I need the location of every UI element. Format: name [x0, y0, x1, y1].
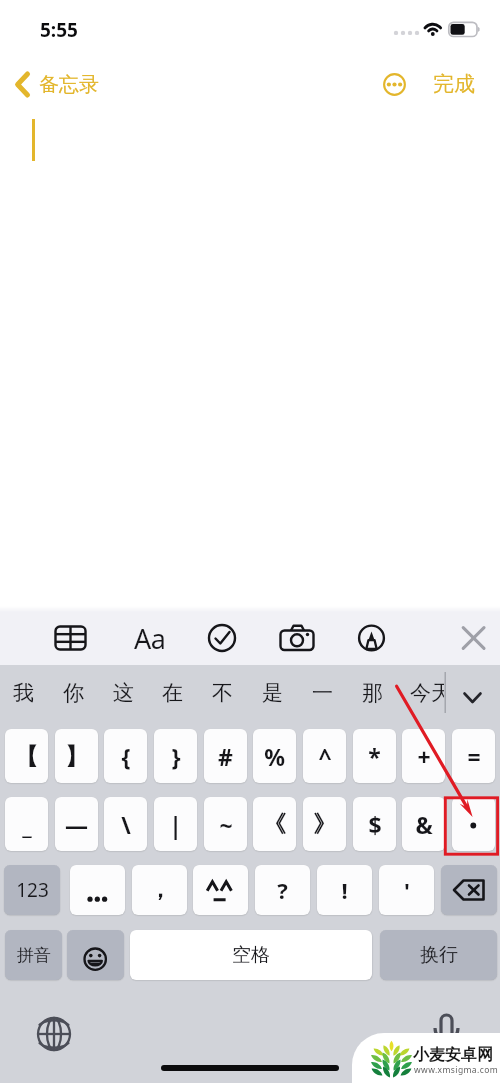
- button[interactable]: 一: [298, 665, 347, 721]
- staticText: !: [341, 875, 348, 905]
- button[interactable]: #: [204, 729, 247, 783]
- button[interactable]: Expand candidates: [450, 665, 500, 721]
- button[interactable]: ，: [132, 865, 187, 915]
- button[interactable]: —: [55, 797, 98, 851]
- staticText: 这: [113, 680, 134, 706]
- button[interactable]: ': [379, 865, 434, 915]
- button[interactable]: %: [253, 729, 296, 783]
- staticText: ~: [219, 809, 233, 840]
- button[interactable]: Close keyboard: [450, 613, 498, 661]
- button[interactable]: ~: [204, 797, 247, 851]
- button[interactable]: Camera: [271, 613, 323, 661]
- staticText: 那: [362, 680, 383, 706]
- staticText: 一: [312, 680, 333, 706]
- staticText: 5:55: [40, 17, 78, 43]
- staticText: +: [417, 741, 431, 772]
- button[interactable]: &: [402, 797, 445, 851]
- button[interactable]: |: [154, 797, 197, 851]
- button[interactable]: Switch keyboard language: [36, 1016, 72, 1052]
- button[interactable]: Insert table: [45, 613, 97, 661]
- button[interactable]: 这: [99, 665, 148, 721]
- button[interactable]: 123: [4, 865, 60, 915]
- button[interactable]: !: [317, 865, 372, 915]
- button[interactable]: Emoticon: [193, 865, 248, 915]
- staticText: 小麦安卓网: [413, 1045, 493, 1065]
- button[interactable]: =: [452, 729, 495, 783]
- button[interactable]: ^: [303, 729, 346, 783]
- staticText: ': [404, 875, 410, 905]
- button[interactable]: ?: [255, 865, 310, 915]
- button[interactable]: Dictation: [430, 1008, 464, 1048]
- button[interactable]: *: [353, 729, 396, 783]
- staticText: |: [169, 809, 182, 840]
- button[interactable]: $: [353, 797, 396, 851]
- staticText: 《: [263, 810, 286, 839]
- staticText: {: [121, 741, 131, 772]
- button[interactable]: 你: [49, 665, 98, 721]
- button[interactable]: Ellipsis: [70, 865, 125, 915]
- staticText: \: [121, 809, 131, 840]
- staticText: 完成: [433, 71, 475, 97]
- staticText: 不: [212, 680, 233, 706]
- button[interactable]: +: [402, 729, 445, 783]
- button[interactable]: Emoji: [67, 930, 124, 980]
- button[interactable]: 】: [55, 729, 98, 783]
- staticText: 】: [65, 742, 88, 771]
- button[interactable]: }: [154, 729, 197, 783]
- staticText: *: [368, 741, 381, 772]
- button[interactable]: Backspace: [441, 865, 497, 915]
- staticText: _: [22, 809, 32, 840]
- staticText: Aa: [134, 620, 166, 657]
- staticText: ^: [318, 741, 332, 772]
- button[interactable]: 备忘录: [8, 62, 107, 106]
- staticText: 【: [15, 742, 38, 771]
- staticText: ?: [277, 875, 288, 905]
- staticText: 换行: [420, 943, 458, 967]
- staticText: 空格: [232, 943, 270, 967]
- button[interactable]: 我: [0, 665, 48, 721]
- staticText: 我: [13, 680, 34, 706]
- button[interactable]: 《: [253, 797, 296, 851]
- staticText: www.xmsigma.com: [414, 1064, 499, 1076]
- button[interactable]: 是: [248, 665, 297, 721]
- staticText: }: [171, 741, 181, 772]
- staticText: &: [415, 809, 433, 840]
- button[interactable]: 【: [5, 729, 48, 783]
- button[interactable]: 在: [148, 665, 197, 721]
- staticText: 123: [16, 877, 49, 903]
- staticText: 》: [313, 810, 336, 839]
- button[interactable]: _: [5, 797, 48, 851]
- button[interactable]: 不: [198, 665, 247, 721]
- staticText: $: [368, 809, 382, 840]
- button[interactable]: Middle dot: [452, 797, 495, 851]
- button[interactable]: 换行: [380, 930, 497, 980]
- staticText: =: [467, 741, 481, 772]
- button[interactable]: \: [104, 797, 147, 851]
- staticText: —: [65, 809, 88, 840]
- button[interactable]: 空格: [130, 930, 372, 980]
- staticText: %: [264, 741, 285, 772]
- staticText: 备忘录: [39, 72, 99, 97]
- staticText: 你: [63, 680, 84, 706]
- button[interactable]: 完成: [425, 62, 483, 106]
- button[interactable]: {: [104, 729, 147, 783]
- staticText: 在: [162, 680, 183, 706]
- button[interactable]: More options: [383, 73, 406, 96]
- staticText: #: [218, 741, 233, 772]
- button[interactable]: 那: [348, 665, 397, 721]
- button[interactable]: 拼音: [5, 930, 62, 980]
- staticText: ，: [149, 876, 171, 904]
- button[interactable]: Aa: [126, 613, 174, 663]
- staticText: 今天: [410, 680, 444, 706]
- button[interactable]: Markup: [346, 613, 398, 661]
- button[interactable]: 今天: [410, 665, 444, 721]
- staticText: 是: [262, 680, 283, 706]
- staticText: 拼音: [17, 945, 51, 966]
- button[interactable]: Checklist: [196, 613, 248, 661]
- button[interactable]: 》: [303, 797, 346, 851]
